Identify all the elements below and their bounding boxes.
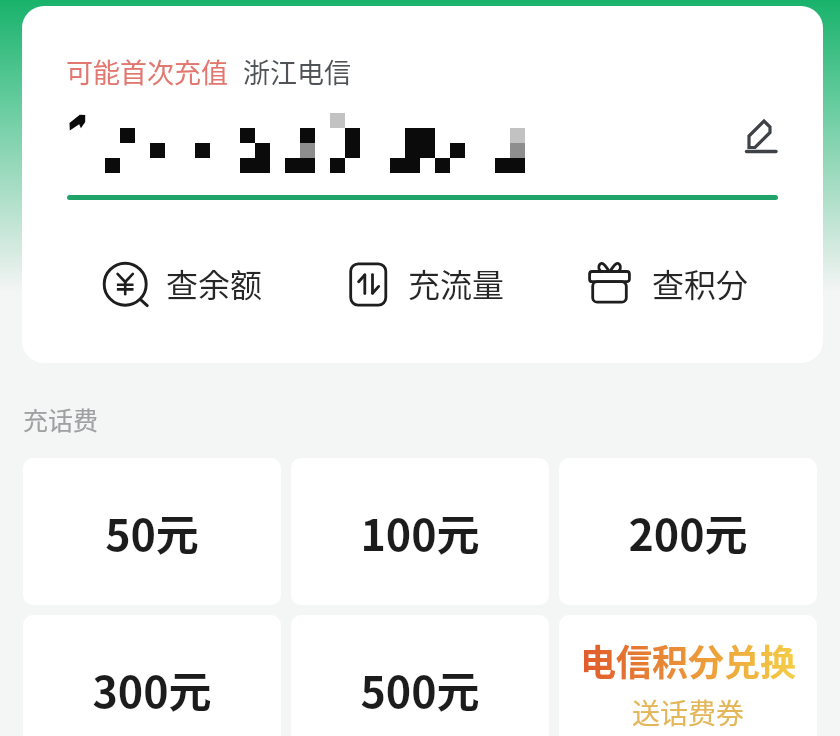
staticText: 100元 bbox=[360, 501, 480, 563]
staticText: 浙江电信 bbox=[243, 52, 351, 91]
button[interactable]: 查积分 bbox=[588, 259, 749, 306]
staticText: 电信积分兑换 bbox=[580, 634, 797, 686]
button[interactable]: 200元 bbox=[559, 458, 817, 605]
button[interactable]: 50元 bbox=[23, 458, 281, 605]
button[interactable]: 500元 bbox=[291, 615, 549, 736]
staticText: 200元 bbox=[628, 501, 748, 563]
staticText: 查余额 bbox=[166, 260, 263, 306]
staticText: 可能首次充值 bbox=[66, 52, 228, 91]
staticText: 查积分 bbox=[652, 260, 749, 306]
staticText: 500元 bbox=[360, 658, 480, 720]
staticText: 充话费 bbox=[23, 401, 99, 437]
button[interactable]: 100元 bbox=[291, 458, 549, 605]
staticText: 50元 bbox=[105, 501, 199, 563]
staticText: 300元 bbox=[92, 658, 212, 720]
button[interactable]: 编辑号码 bbox=[730, 109, 794, 173]
staticText: 充流量 bbox=[408, 260, 505, 306]
staticText: 送话费券 bbox=[632, 692, 745, 733]
button[interactable]: 充流量 bbox=[344, 259, 505, 306]
button[interactable]: 查余额 bbox=[102, 259, 263, 306]
button[interactable]: 电信积分兑换 bbox=[559, 615, 817, 736]
button[interactable]: 300元 bbox=[23, 615, 281, 736]
